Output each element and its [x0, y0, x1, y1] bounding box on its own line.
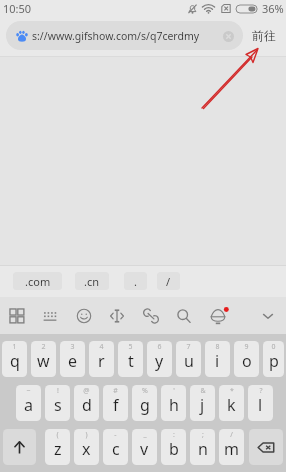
button[interactable]: Clipboard: [134, 297, 168, 334]
button[interactable]: 6: [147, 341, 172, 377]
button[interactable]: Clear text: [217, 25, 239, 47]
button[interactable]: #: [103, 385, 128, 421]
button[interactable]: &: [190, 385, 215, 421]
staticText: ': [173, 386, 175, 396]
button[interactable]: s://www.gifshow.com/s/q7cerdmy: [6, 21, 243, 50]
staticText: .cn: [84, 274, 100, 289]
button[interactable]: 0: [263, 341, 284, 377]
button[interactable]: ': [161, 385, 186, 421]
staticText: 4: [99, 342, 104, 352]
button[interactable]: ~: [16, 385, 41, 421]
button[interactable]: .cn: [75, 272, 109, 290]
button[interactable]: ): [74, 429, 99, 465]
button[interactable]: .: [124, 272, 147, 290]
button[interactable]: 9: [234, 341, 259, 377]
staticText: l: [258, 394, 263, 416]
staticText: _: [143, 430, 147, 440]
staticText: 前往: [252, 28, 276, 43]
staticText: ~: [26, 386, 31, 396]
staticText: 3: [70, 342, 75, 352]
staticText: n: [198, 438, 208, 460]
button[interactable]: 4: [89, 341, 114, 377]
staticText: m: [224, 438, 239, 460]
staticText: ?: [259, 386, 263, 396]
staticText: /: [166, 274, 171, 289]
staticText: :: [173, 430, 175, 440]
button[interactable]: Keyboard layout: [33, 297, 67, 334]
staticText: &: [200, 386, 206, 396]
button[interactable]: -: [103, 429, 128, 465]
button[interactable]: Apps: [0, 297, 34, 334]
staticText: o: [242, 350, 252, 372]
button[interactable]: @: [74, 385, 99, 421]
staticText: k: [227, 394, 236, 416]
button[interactable]: Search: [167, 297, 201, 334]
staticText: 0: [271, 342, 276, 352]
button[interactable]: (: [45, 429, 70, 465]
staticText: -: [114, 430, 117, 440]
button[interactable]: !: [45, 385, 70, 421]
staticText: r: [98, 350, 105, 372]
button[interactable]: Text editing: [100, 297, 134, 334]
button[interactable]: 前往: [242, 21, 286, 50]
button[interactable]: 2: [31, 341, 56, 377]
button[interactable]: 7: [176, 341, 201, 377]
staticText: j: [200, 394, 205, 416]
staticText: /: [230, 430, 233, 440]
staticText: 6: [157, 342, 162, 352]
staticText: v: [140, 438, 149, 460]
staticText: q: [10, 350, 20, 372]
staticText: !: [57, 386, 59, 396]
button[interactable]: Hide keyboard: [251, 297, 285, 334]
button[interactable]: .com: [13, 272, 62, 290]
staticText: h: [169, 394, 179, 416]
button[interactable]: ?: [248, 385, 273, 421]
staticText: y: [155, 350, 164, 372]
staticText: u: [184, 350, 194, 372]
staticText: 7: [186, 342, 191, 352]
staticText: e: [68, 350, 78, 372]
button[interactable]: ;: [190, 429, 215, 465]
staticText: ;: [202, 430, 204, 440]
button[interactable]: 3: [60, 341, 85, 377]
button[interactable]: Emoji: [67, 297, 101, 334]
staticText: x: [82, 438, 91, 460]
staticText: f: [113, 394, 119, 416]
button[interactable]: 8: [205, 341, 230, 377]
button[interactable]: Theme: [201, 297, 235, 334]
staticText: 10:50: [3, 1, 32, 16]
button[interactable]: %: [132, 385, 157, 421]
button[interactable]: Shift: [3, 429, 36, 465]
staticText: (: [56, 430, 59, 440]
button[interactable]: /: [219, 429, 244, 465]
staticText: %: [142, 386, 148, 396]
button[interactable]: 5: [118, 341, 143, 377]
staticText: s://www.gifshow.com/s/q7cerdmy: [32, 29, 200, 43]
staticText: w: [37, 350, 50, 372]
button[interactable]: :: [161, 429, 186, 465]
staticText: 36%: [262, 1, 284, 16]
staticText: .: [134, 274, 137, 289]
staticText: 9: [244, 342, 249, 352]
staticText: 2: [41, 342, 46, 352]
staticText: z: [54, 438, 62, 460]
staticText: *: [230, 386, 234, 396]
button[interactable]: _: [132, 429, 157, 465]
staticText: d: [82, 394, 92, 416]
staticText: g: [140, 394, 150, 416]
staticText: b: [169, 438, 179, 460]
staticText: t: [128, 350, 134, 372]
button[interactable]: Backspace: [249, 429, 283, 465]
staticText: a: [24, 394, 33, 416]
staticText: p: [269, 350, 279, 372]
button[interactable]: /: [157, 272, 180, 290]
staticText: c: [112, 438, 120, 460]
staticText: .com: [25, 274, 51, 289]
button[interactable]: 1: [2, 341, 27, 377]
staticText: #: [113, 386, 118, 396]
button[interactable]: *: [219, 385, 244, 421]
staticText: @: [83, 386, 90, 396]
staticText: s: [54, 394, 62, 416]
staticText: 1: [12, 342, 17, 352]
staticText: i: [215, 350, 220, 372]
